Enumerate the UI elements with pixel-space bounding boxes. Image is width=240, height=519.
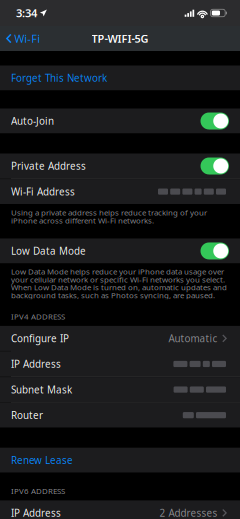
button[interactable]: IP Address	[0, 500, 240, 519]
button[interactable]: Wi-Fi	[0, 26, 40, 51]
staticText: Forget This Network	[11, 71, 107, 85]
button[interactable]: Auto-Join	[0, 108, 240, 133]
staticText: Low Data Mode	[11, 244, 86, 258]
button[interactable]: Private Address	[0, 153, 240, 178]
button[interactable]: Forget This Network	[0, 65, 240, 90]
staticText: Router	[11, 408, 43, 422]
staticText: Subnet Mask	[11, 383, 72, 396]
staticText: Automatic	[169, 332, 218, 345]
staticText: Private Address	[11, 159, 86, 173]
staticText: Using a private address helps reduce tra…	[11, 209, 207, 224]
staticText: 2 Addresses	[160, 506, 218, 519]
staticText: Auto-Join	[11, 114, 54, 128]
staticText: IP Address	[11, 357, 61, 371]
staticText: Renew Lease	[11, 453, 73, 467]
staticText: Configure IP	[11, 332, 69, 345]
button[interactable]: Low Data Mode	[0, 238, 240, 263]
staticText: Low Data Mode helps reduce your iPhone d…	[11, 267, 227, 299]
staticText: IP Address	[11, 506, 61, 519]
staticText: Wi-Fi Address	[11, 185, 75, 198]
button[interactable]: Configure IP	[0, 326, 240, 351]
button[interactable]: Renew Lease	[0, 448, 240, 473]
staticText: Wi-Fi	[14, 31, 40, 46]
staticText: 3:34	[16, 5, 37, 21]
staticText: IPV6 ADDRESS	[11, 486, 65, 496]
staticText: TP-WIFI-5G	[91, 31, 148, 46]
staticText: IPV4 ADDRESS	[11, 311, 65, 322]
